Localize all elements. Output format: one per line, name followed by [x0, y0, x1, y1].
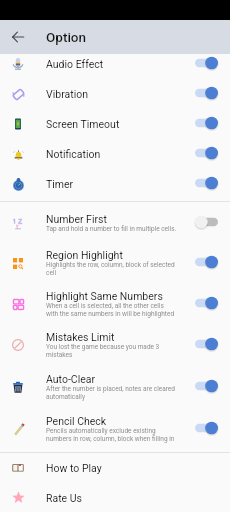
staticText: You lost the game because you made 3 mis… [46, 343, 177, 359]
button[interactable]: Vibration [0, 79, 230, 109]
staticText: Option [46, 29, 86, 45]
staticText: Number First [46, 213, 107, 225]
button[interactable]: How to Play [0, 453, 230, 483]
staticText: Highlight Same Numbers [46, 290, 163, 302]
staticText: After the number is placed, notes are cl… [46, 385, 177, 401]
staticText: Region Highlight [46, 249, 123, 261]
button[interactable]: Toggle [195, 146, 218, 160]
button[interactable]: Number First [0, 203, 230, 239]
staticText: Screen Timeout [46, 118, 187, 130]
button[interactable]: Back [6, 25, 30, 49]
staticText: Auto-Clear [46, 373, 96, 385]
staticText: Tap and hold a number to fill in multipl… [46, 225, 177, 233]
button[interactable]: Toggle [195, 337, 218, 351]
button[interactable]: Toggle [195, 296, 218, 310]
staticText: Highlights the row, column, block of sel… [46, 261, 177, 277]
staticText: Timer [46, 178, 187, 190]
staticText: Audio Effect [46, 58, 187, 70]
button[interactable]: Auto-Clear [0, 363, 230, 405]
button[interactable]: Screen Timeout [0, 109, 230, 139]
button[interactable]: Audio Effect [0, 49, 230, 79]
button[interactable]: Mistakes Limit [0, 321, 230, 363]
button[interactable]: Toggle [195, 215, 218, 229]
button[interactable]: Region Highlight [0, 239, 230, 280]
button[interactable]: Toggle [195, 116, 218, 130]
button[interactable]: Toggle [195, 56, 218, 70]
button[interactable]: Notification [0, 139, 230, 169]
staticText: Rate Us [46, 492, 222, 504]
staticText: Pencil Check [46, 415, 107, 427]
button[interactable]: Toggle [195, 176, 218, 190]
staticText: Notification [46, 148, 187, 160]
button[interactable]: Highlight Same Numbers [0, 280, 230, 321]
button[interactable]: Timer [0, 169, 230, 199]
button[interactable]: Toggle [195, 421, 218, 435]
staticText: Vibration [46, 88, 187, 100]
button[interactable]: Rate Us [0, 483, 230, 512]
button[interactable]: Toggle [195, 255, 218, 269]
staticText: When a cell is selected, all the other c… [46, 302, 177, 318]
button[interactable]: Pencil Check [0, 405, 230, 447]
staticText: How to Play [46, 462, 222, 474]
staticText: Mistakes Limit [46, 331, 115, 343]
button[interactable]: Toggle [195, 86, 218, 100]
button[interactable]: Toggle [195, 379, 218, 393]
staticText: Pencils automatically exclude existing n… [46, 427, 177, 443]
